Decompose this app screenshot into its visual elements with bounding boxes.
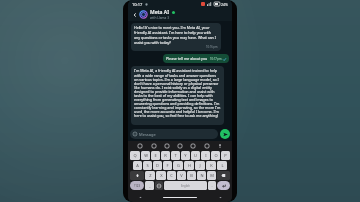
staticText: , [149, 183, 151, 188]
button[interactable]: Language [155, 181, 163, 190]
staticText: E [154, 153, 157, 158]
button[interactable]: N [197, 171, 206, 180]
staticText: P [224, 153, 227, 158]
staticText: A [136, 163, 139, 168]
button[interactable]: C [167, 171, 176, 180]
staticText: U [194, 153, 197, 158]
button[interactable]: Tool 6 [204, 143, 210, 149]
button[interactable]: . [208, 181, 216, 190]
button[interactable]: I [201, 151, 210, 160]
button[interactable]: Tool 2 [151, 143, 157, 149]
staticText: C [170, 173, 173, 178]
staticText: O [214, 153, 218, 158]
staticText: X [160, 173, 163, 178]
button[interactable]: Recents [208, 193, 232, 202]
staticText: Y [184, 153, 187, 158]
button[interactable]: M [207, 171, 216, 180]
button[interactable]: F [163, 161, 172, 170]
staticText: F [166, 163, 169, 168]
staticText: Meta AI [150, 9, 170, 16]
button[interactable]: E [151, 151, 160, 160]
button[interactable]: Q [130, 151, 140, 160]
button[interactable]: Tool 1 [137, 143, 143, 149]
staticText: J [199, 163, 201, 168]
button[interactable]: Back [128, 193, 152, 202]
button[interactable]: T [171, 151, 180, 160]
staticText: D [156, 163, 159, 168]
staticText: R [164, 153, 167, 158]
staticText: T [174, 153, 177, 158]
staticText: . [211, 183, 213, 188]
button[interactable]: Shift [130, 171, 144, 180]
button[interactable]: Tool 5 [190, 143, 196, 149]
staticText: H [188, 163, 191, 168]
staticText: ?123 [134, 184, 141, 188]
button[interactable]: Enter [217, 181, 230, 190]
button[interactable]: R [161, 151, 170, 160]
button[interactable]: A [133, 161, 142, 170]
staticText: 24% [221, 2, 228, 7]
button[interactable]: H [184, 161, 194, 170]
button[interactable]: B [187, 171, 196, 180]
staticText: L [221, 163, 224, 168]
staticText: B [190, 173, 193, 178]
staticText: English [181, 184, 190, 188]
staticText: Message [139, 132, 156, 137]
staticText: 10:16 pm [206, 45, 218, 49]
button[interactable]: U [191, 151, 200, 160]
staticText: Hello! It's nice to meet you. I'm Meta A… [134, 25, 218, 45]
button[interactable]: Space [164, 181, 207, 190]
button[interactable]: P [221, 151, 230, 160]
button[interactable]: W [141, 151, 150, 160]
staticText: I [205, 153, 207, 158]
button[interactable]: Tool 4 [177, 143, 183, 149]
button[interactable]: O [211, 151, 220, 160]
button[interactable]: L [217, 161, 227, 170]
button[interactable]: Numbers [130, 181, 144, 190]
button[interactable]: Home [163, 197, 197, 198]
staticText: M [210, 173, 214, 178]
staticText: Q [133, 153, 137, 158]
staticText: Z [149, 173, 152, 178]
button[interactable]: Send [220, 129, 230, 139]
staticText: N [200, 173, 204, 178]
button[interactable]: S [143, 161, 152, 170]
staticText: Please tell me about you [166, 56, 208, 61]
button[interactable]: Message [130, 129, 218, 139]
button[interactable]: , [145, 181, 154, 190]
button[interactable]: Backspace [217, 171, 230, 180]
button[interactable]: G [173, 161, 183, 170]
button[interactable]: X [156, 171, 166, 180]
staticText: I'm Meta AI, a friendly AI assistant tra… [134, 68, 221, 118]
button[interactable]: J [195, 161, 205, 170]
staticText: 10:17 [132, 2, 143, 7]
button[interactable]: Y [181, 151, 190, 160]
staticText: V [180, 173, 183, 178]
button[interactable]: Back [131, 11, 138, 18]
staticText: G [177, 163, 180, 168]
button[interactable]: Tool 3 [164, 143, 170, 149]
staticText: W [144, 153, 148, 158]
staticText: 10:17 pm [210, 57, 222, 61]
button[interactable]: Z [145, 171, 155, 180]
button[interactable]: V [177, 171, 186, 180]
staticText: K [210, 163, 213, 168]
staticText: S [146, 163, 149, 168]
button[interactable]: Tool 7 [217, 143, 223, 149]
button[interactable]: D [153, 161, 162, 170]
button[interactable]: K [206, 161, 216, 170]
staticText: with Llama 3 [150, 16, 169, 20]
